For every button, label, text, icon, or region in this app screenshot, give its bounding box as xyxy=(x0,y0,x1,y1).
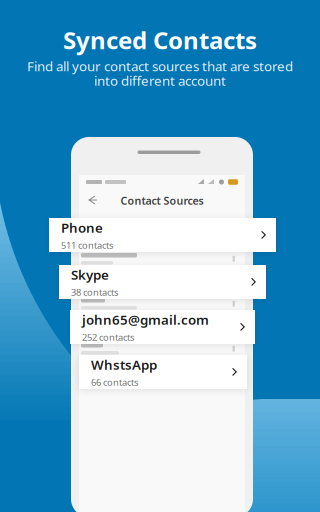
staticText: into different account xyxy=(94,72,226,89)
button[interactable]: Phone xyxy=(49,218,276,252)
staticText: john65@gmail.com xyxy=(82,311,209,328)
staticText: 38 contacts xyxy=(71,286,118,298)
button[interactable]: WhstsApp xyxy=(79,355,247,389)
staticText: WhstsApp xyxy=(91,356,157,373)
staticText: Find all your contact sources that are s… xyxy=(27,57,293,75)
staticText: Skype xyxy=(71,266,109,283)
staticText: Phone xyxy=(61,219,103,236)
staticText: 511 contacts xyxy=(61,239,113,251)
button[interactable]: john65@gmail.com xyxy=(70,310,255,344)
staticText: 66 contacts xyxy=(91,376,138,388)
button[interactable]: Skype xyxy=(59,265,266,299)
staticText: Contact Sources xyxy=(120,193,203,208)
staticText: 252 contacts xyxy=(82,331,134,343)
staticText: Synced Contacts xyxy=(63,24,257,56)
